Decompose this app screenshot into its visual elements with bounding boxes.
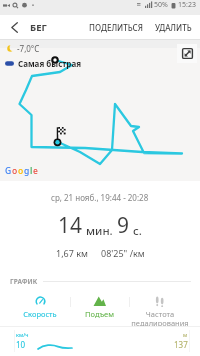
staticText: Частота педалирования (131, 309, 189, 326)
staticText: Подъем (85, 309, 114, 319)
staticText: 137 (174, 339, 188, 350)
staticText: 08'25" /км (101, 247, 145, 259)
button[interactable]: УДАЛИТЬ (151, 17, 200, 38)
button[interactable]: ПОДЕЛИТЬСЯ (85, 17, 147, 38)
staticText: -7,0°C (17, 43, 40, 54)
staticText: Самая быстрая (18, 58, 82, 69)
staticText: g (24, 165, 30, 177)
staticText: с. (133, 223, 142, 239)
staticText: км/ч (16, 331, 29, 338)
staticText: o (12, 165, 18, 177)
staticText: G (5, 165, 12, 177)
button[interactable]: Expand map (177, 44, 197, 63)
staticText: ГРАФИК (10, 277, 38, 286)
staticText: БЕГ (30, 21, 47, 34)
staticText: e (33, 165, 38, 177)
button[interactable]: Back (0, 15, 28, 39)
staticText: 1,67 км (56, 247, 88, 259)
staticText: ПОДЕЛИТЬСЯ (89, 22, 143, 33)
staticText: 15:23 (178, 0, 196, 10)
staticText: м (183, 331, 188, 338)
button[interactable]: Подъем (70, 296, 129, 319)
staticText: Скорость (23, 309, 57, 319)
button[interactable]: Частота педалирования (129, 296, 190, 326)
staticText: 14 (58, 211, 83, 240)
staticText: 10 (16, 339, 26, 350)
staticText: o (18, 165, 24, 177)
staticText: мин. (86, 223, 113, 239)
staticText: ср, 21 нояб., 19:44 - 20:28 (51, 192, 149, 203)
staticText: l (30, 165, 33, 177)
button[interactable]: Скорость (10, 296, 70, 319)
staticText: 9 (117, 211, 130, 240)
staticText: 50% (154, 0, 168, 10)
staticText: УДАЛИТЬ (155, 22, 192, 33)
